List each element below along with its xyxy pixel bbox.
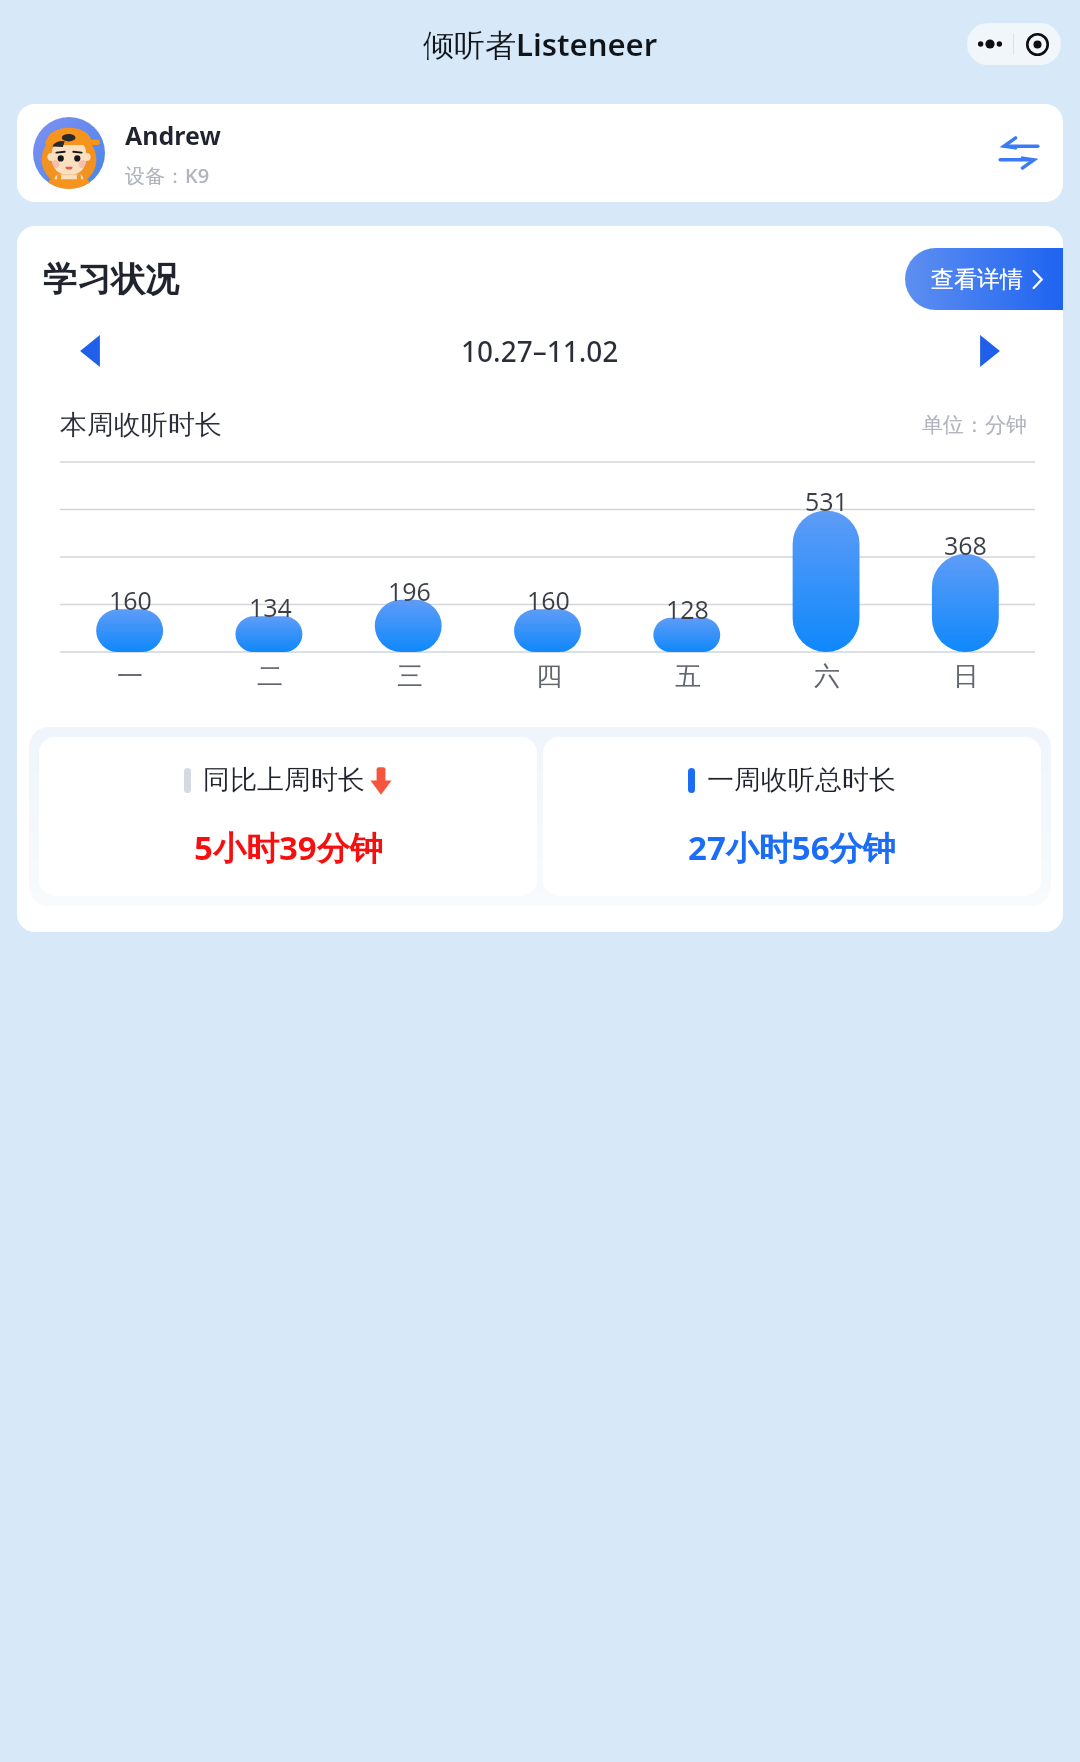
staticText: 同比上周时长 (203, 763, 365, 797)
staticText: 一周收听总时长 (707, 763, 896, 797)
staticText: 160 (527, 583, 570, 617)
staticText: 设备：K9 (125, 162, 210, 189)
staticText: 本周收听时长 (60, 408, 222, 442)
staticText: 四 (536, 660, 562, 693)
staticText: 196 (388, 574, 431, 608)
staticText: 日 (953, 660, 979, 693)
staticText: 单位：分钟 (922, 412, 1027, 438)
staticText: 10.27–11.02 (461, 332, 619, 370)
button[interactable]: Next week (963, 324, 1017, 378)
staticText: 五 (675, 660, 701, 693)
staticText: 三 (397, 660, 423, 693)
staticText: Andrew (125, 118, 221, 152)
button[interactable]: 一周收听总时长 (543, 737, 1041, 896)
staticText: 六 (814, 660, 840, 693)
button[interactable]: 同比上周时长 (39, 737, 537, 896)
staticText: 128 (666, 592, 709, 626)
button[interactable]: Previous week (63, 324, 117, 378)
button[interactable]: Andrew (17, 104, 1063, 202)
staticText: 134 (249, 590, 292, 624)
staticText: 学习状况 (43, 258, 179, 301)
staticText: 一 (117, 660, 143, 693)
button[interactable]: More (967, 23, 1013, 65)
staticText: 531 (805, 484, 848, 518)
staticText: 27小时56分钟 (688, 825, 896, 870)
staticText: 二 (257, 660, 283, 693)
button[interactable]: Close (1014, 23, 1061, 65)
staticText: 查看详情 (931, 265, 1023, 294)
button[interactable]: Switch device (991, 125, 1047, 181)
staticText: 368 (944, 528, 987, 562)
button[interactable]: 查看详情 (905, 248, 1063, 310)
staticText: 倾听者Listeneer (423, 23, 658, 65)
staticText: 5小时39分钟 (194, 825, 383, 870)
staticText: 160 (109, 583, 152, 617)
